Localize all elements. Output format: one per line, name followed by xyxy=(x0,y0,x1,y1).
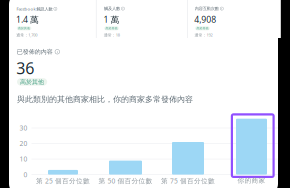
staticText: 10 xyxy=(19,154,27,164)
staticText: 高於其他 xyxy=(18,26,30,30)
button[interactable]: 已發佈的內容 xyxy=(17,48,217,94)
staticText: 36 xyxy=(16,57,34,79)
staticText: 高於其他 xyxy=(106,26,118,30)
staticText: 1 萬 xyxy=(103,14,119,25)
staticText: 第 25 個百分位數 xyxy=(36,176,90,185)
staticText: 1.4 萬 xyxy=(16,14,39,25)
staticText: Facebook 觸及人數 xyxy=(16,6,52,12)
staticText: 觸及人數 xyxy=(104,6,120,11)
button[interactable]: Facebook 觸及人數 xyxy=(16,0,102,38)
staticText: 第 75 個百分位數 xyxy=(161,176,215,185)
staticText: 高於其他 xyxy=(20,78,44,86)
button[interactable]: 內容互動次數 xyxy=(195,0,281,38)
staticText: 20 xyxy=(19,139,27,148)
staticText: 與此類別的其他商家相比，你的商家多常發佈內容 xyxy=(17,94,193,104)
staticText: 通常：1,700 xyxy=(16,32,37,38)
staticText: 內容互動次數 xyxy=(195,6,219,11)
staticText: 0 xyxy=(23,170,27,179)
staticText: 高於其他 xyxy=(196,26,208,30)
button[interactable]: 觸及人數 xyxy=(104,0,190,38)
staticText: 已發佈的內容 xyxy=(17,48,53,56)
staticText: 第 50 個百分位數 xyxy=(98,176,152,185)
staticText: 通常：192 xyxy=(195,32,213,38)
staticText: 4,908 xyxy=(194,14,216,25)
staticText: 30 xyxy=(19,123,27,132)
staticText: 通常：18 xyxy=(104,32,120,38)
staticText: 你的商家 xyxy=(237,176,265,185)
